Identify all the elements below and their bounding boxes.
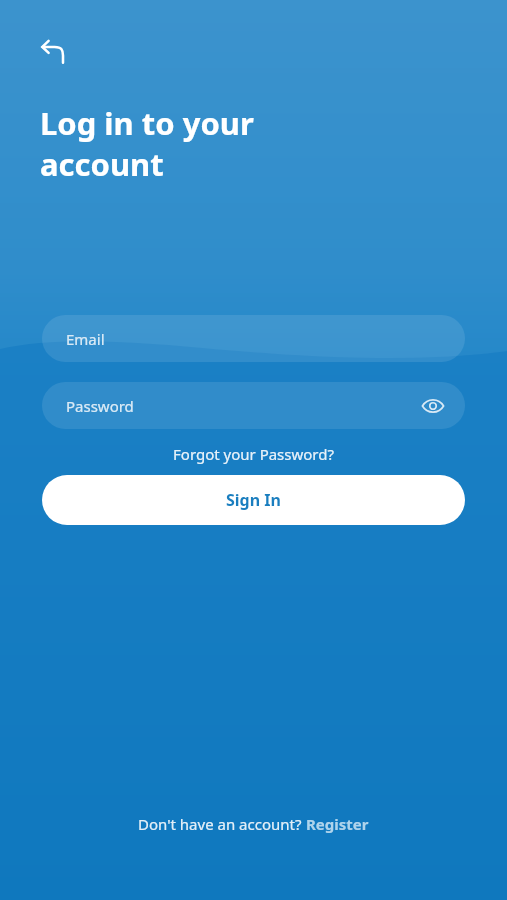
button[interactable]: Back — [30, 28, 78, 76]
button[interactable]: Sign In — [42, 475, 465, 525]
staticText: Forgot your Password? — [173, 444, 334, 464]
button[interactable]: Email — [42, 315, 465, 362]
staticText: Sign In — [226, 489, 281, 511]
button[interactable]: Password — [42, 382, 465, 429]
button[interactable]: Forgot your Password? — [165, 441, 342, 467]
staticText: Don't have an account? — [138, 814, 306, 834]
staticText: Email — [66, 329, 105, 349]
staticText: Log in to your account — [40, 102, 254, 185]
button[interactable]: Show password — [413, 386, 453, 426]
staticText: Register — [306, 814, 369, 834]
button[interactable]: Don't have an account? — [128, 810, 379, 838]
staticText: Password — [66, 396, 134, 416]
